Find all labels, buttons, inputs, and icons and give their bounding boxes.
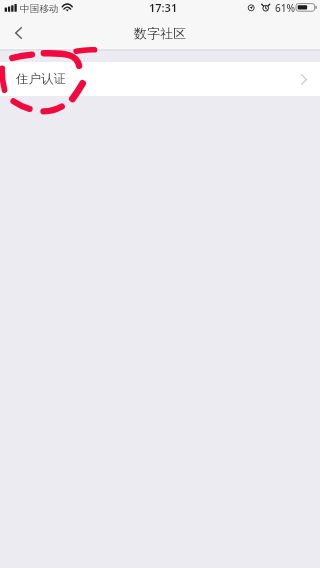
staticText: 中国移动 [20, 3, 59, 15]
staticText: 数字社区 [134, 25, 186, 41]
staticText: 61% [275, 1, 295, 15]
staticText: 住户认证 [16, 71, 66, 87]
staticText: 17:31 [149, 0, 178, 15]
button[interactable]: 住户认证 [0, 62, 320, 96]
button[interactable]: Back [0, 18, 36, 48]
